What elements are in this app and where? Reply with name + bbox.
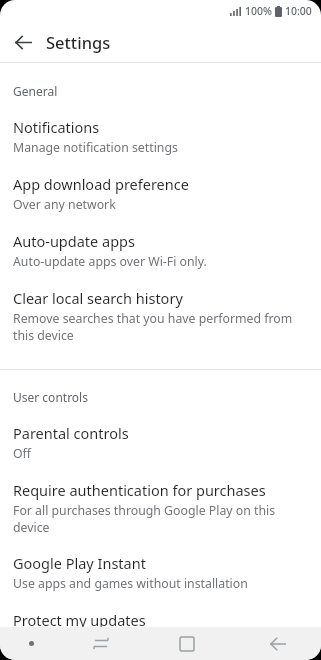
staticText: Use apps and games without installation [13,575,248,592]
staticText: Google Play Instant [13,553,146,573]
button[interactable]: Google Play Instant [0,544,321,601]
button[interactable]: App download preference [0,165,321,222]
staticText: For all purchases through Google Play on… [13,502,305,535]
staticText: Clear local search history [13,288,183,308]
button[interactable]: Notifications [0,108,321,165]
button[interactable]: Parental controls [0,414,321,471]
staticText: Auto-update apps over Wi-Fi only. [13,253,207,270]
staticText: 10:00 [285,4,312,18]
staticText: Notifications [13,117,100,137]
staticText: Require authentication for purchases [13,480,266,500]
button[interactable]: Switch apps [63,627,138,660]
staticText: Settings [46,31,111,53]
staticText: Parental controls [13,423,129,443]
staticText: Manage notification settings [13,139,178,156]
staticText: Protect my updates [13,610,146,630]
staticText: Off [13,445,32,462]
staticText: Over any network [13,196,116,213]
button[interactable]: Clear local search history [0,279,321,352]
staticText: User controls [13,389,88,405]
staticText: 100% [245,4,272,18]
button[interactable]: Auto-update apps [0,222,321,279]
button[interactable]: Protect my updates [0,601,321,639]
staticText: Auto-update apps [13,231,135,251]
staticText: General [13,83,58,99]
button[interactable]: Back [0,22,46,62]
button[interactable]: Require authentication for purchases [0,471,321,544]
button[interactable]: Assistant [0,627,63,660]
staticText: App download preference [13,174,189,194]
staticText: Remove searches that you have performed … [13,310,305,343]
button[interactable]: Home [138,627,235,660]
button[interactable]: Back [235,627,321,660]
